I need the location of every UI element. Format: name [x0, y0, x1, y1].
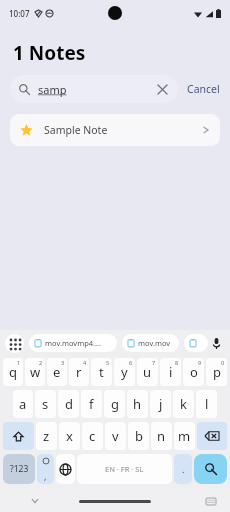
button[interactable]: 0: [206, 358, 227, 386]
button[interactable]: Shift: [3, 422, 34, 450]
button[interactable]: Cancel: [185, 78, 222, 100]
staticText: 6: [129, 359, 133, 366]
staticText: 7: [152, 359, 156, 366]
staticText: a: [19, 395, 27, 413]
button[interactable]: Emoji and comma: [37, 454, 54, 484]
button[interactable]: Search: [194, 454, 227, 484]
staticText: 2: [39, 359, 43, 366]
staticText: Cancel: [187, 82, 220, 96]
button[interactable]: a: [13, 390, 33, 418]
staticText: u: [143, 363, 152, 381]
staticText: 3: [61, 359, 65, 366]
staticText: 1 Notes: [13, 40, 86, 66]
button[interactable]: mov.mov: [122, 334, 179, 352]
staticText: 1: [17, 359, 21, 366]
button[interactable]: x: [59, 422, 80, 450]
staticText: ,: [44, 470, 47, 482]
button[interactable]: ?123: [3, 454, 35, 484]
staticText: c: [89, 427, 96, 445]
staticText: EN · FR · SL: [105, 464, 144, 474]
button[interactable]: 6: [114, 358, 135, 386]
button[interactable]: v: [105, 422, 126, 450]
button[interactable]: Clear search: [155, 82, 169, 96]
staticText: samp: [38, 82, 67, 97]
staticText: ?123: [10, 463, 29, 475]
staticText: j: [159, 395, 163, 413]
button[interactable]: Sample Note: [10, 114, 220, 146]
button[interactable]: Switch keyboard: [204, 494, 218, 508]
staticText: n: [157, 427, 166, 445]
staticText: 4: [83, 359, 87, 366]
button[interactable]: m: [174, 422, 195, 450]
staticText: Sample Note: [44, 123, 108, 137]
button[interactable]: Hide keyboard: [28, 494, 42, 508]
button[interactable]: 8: [160, 358, 181, 386]
button[interactable]: 9: [183, 358, 204, 386]
button[interactable]: Change language: [56, 454, 75, 484]
staticText: m: [178, 427, 191, 445]
button[interactable]: samp: [10, 75, 178, 103]
button[interactable]: EN · FR · SL: [77, 454, 172, 484]
button[interactable]: k: [173, 390, 194, 418]
staticText: q: [9, 363, 17, 381]
staticText: w: [30, 363, 41, 381]
staticText: r: [76, 363, 82, 381]
staticText: s: [42, 395, 49, 413]
button[interactable]: Period: [174, 454, 192, 484]
staticText: b: [135, 427, 143, 445]
staticText: z: [43, 427, 50, 445]
staticText: 5: [106, 359, 110, 366]
button[interactable]: 1: [3, 358, 23, 386]
staticText: 8: [175, 359, 179, 366]
button[interactable]: [184, 334, 208, 352]
button[interactable]: Voice input: [208, 334, 225, 352]
staticText: t: [99, 363, 104, 381]
staticText: 0: [221, 359, 225, 366]
button[interactable]: Apps: [5, 334, 24, 353]
button[interactable]: f: [81, 390, 102, 418]
staticText: i: [169, 363, 173, 381]
staticText: d: [65, 395, 73, 413]
staticText: 9: [198, 359, 202, 366]
button[interactable]: 7: [137, 358, 158, 386]
staticText: o: [190, 363, 198, 381]
button[interactable]: j: [150, 390, 171, 418]
staticText: mov.mov: [138, 338, 171, 348]
button[interactable]: s: [35, 390, 56, 418]
staticText: 10:07: [9, 8, 30, 19]
button[interactable]: Backspace: [197, 422, 227, 450]
button[interactable]: h: [127, 390, 148, 418]
button[interactable]: n: [151, 422, 172, 450]
button[interactable]: z: [36, 422, 57, 450]
button[interactable]: 5: [91, 358, 112, 386]
staticText: g: [111, 395, 119, 413]
button[interactable]: d: [58, 390, 79, 418]
button[interactable]: 2: [25, 358, 45, 386]
staticText: y: [121, 363, 128, 381]
staticText: x: [66, 427, 73, 445]
staticText: mov.movmp4....: [45, 338, 102, 348]
button[interactable]: l: [196, 390, 217, 418]
staticText: .: [182, 463, 185, 475]
staticText: v: [112, 427, 119, 445]
staticText: h: [133, 395, 142, 413]
staticText: f: [89, 395, 94, 413]
button[interactable]: b: [128, 422, 149, 450]
button[interactable]: 4: [69, 358, 89, 386]
button[interactable]: g: [104, 390, 125, 418]
button[interactable]: mov.movmp4....: [29, 334, 117, 352]
staticText: p: [213, 363, 221, 381]
staticText: k: [180, 395, 187, 413]
staticText: e: [53, 363, 61, 381]
button[interactable]: 3: [47, 358, 67, 386]
button[interactable]: c: [82, 422, 103, 450]
staticText: l: [205, 395, 209, 413]
